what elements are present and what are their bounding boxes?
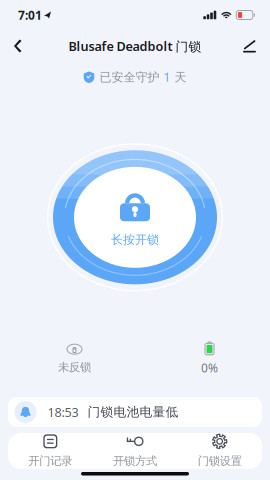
staticText: Blusafe Deadbolt 门锁 (68, 37, 201, 55)
button[interactable]: 开锁方式 (93, 433, 177, 469)
staticText: 开锁方式 (113, 454, 157, 468)
staticText: 已安全守护 (99, 70, 163, 85)
button[interactable]: 长按开锁 (35, 132, 235, 302)
staticText: 门锁设置 (198, 454, 242, 468)
staticText: 1 (163, 69, 170, 85)
button[interactable]: 18:53 (8, 397, 262, 427)
staticText: 7:01 (18, 7, 42, 23)
staticText: 开门记录 (28, 454, 72, 468)
button[interactable]: Edit (229, 31, 270, 61)
button[interactable]: 门锁设置 (177, 433, 262, 469)
staticText: 门锁电池电量低 (87, 404, 178, 420)
staticText: 未反锁 (58, 360, 91, 374)
button[interactable]: 开门记录 (8, 433, 93, 469)
button[interactable]: Back (0, 31, 35, 61)
staticText: 天 (170, 70, 186, 85)
staticText: 长按开锁 (111, 232, 159, 247)
staticText: 18:53 (47, 403, 78, 421)
staticText: 0% (201, 360, 218, 376)
